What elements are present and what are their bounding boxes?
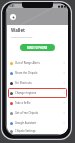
staticText: Google Assistant bbox=[15, 121, 37, 125]
button[interactable]: Out of Range Alerts bbox=[7, 58, 68, 68]
button[interactable]: Change ringtone bbox=[7, 88, 68, 98]
staticText: Chipolo Settings bbox=[15, 129, 36, 133]
staticText: 9:41 bbox=[9, 4, 15, 8]
staticText: Get a Free Chipolo bbox=[15, 111, 39, 115]
staticText: Take a Selfie bbox=[15, 101, 31, 105]
staticText: Lorem ipsum dolor bbox=[11, 35, 33, 38]
staticText: Siri Shortcuts bbox=[15, 81, 32, 85]
button[interactable]: Get a Free Chipolo bbox=[7, 108, 68, 118]
button[interactable]: Google Assistant bbox=[7, 118, 68, 128]
button[interactable]: Take a Selfie bbox=[7, 98, 68, 108]
staticText: Wallet bbox=[11, 27, 25, 33]
staticText: Change ringtone bbox=[15, 91, 37, 95]
staticText: Out of Range Alerts bbox=[15, 61, 40, 65]
staticText: SEND TO PHONE bbox=[27, 46, 48, 49]
staticText: Share the Chipolo bbox=[15, 71, 38, 75]
button[interactable]: Siri Shortcuts bbox=[7, 78, 68, 88]
button[interactable]: Back bbox=[10, 14, 16, 20]
button[interactable]: Share the Chipolo bbox=[7, 68, 68, 78]
button[interactable]: Chipolo Settings bbox=[7, 128, 68, 134]
button[interactable]: SEND TO PHONE bbox=[20, 44, 55, 51]
